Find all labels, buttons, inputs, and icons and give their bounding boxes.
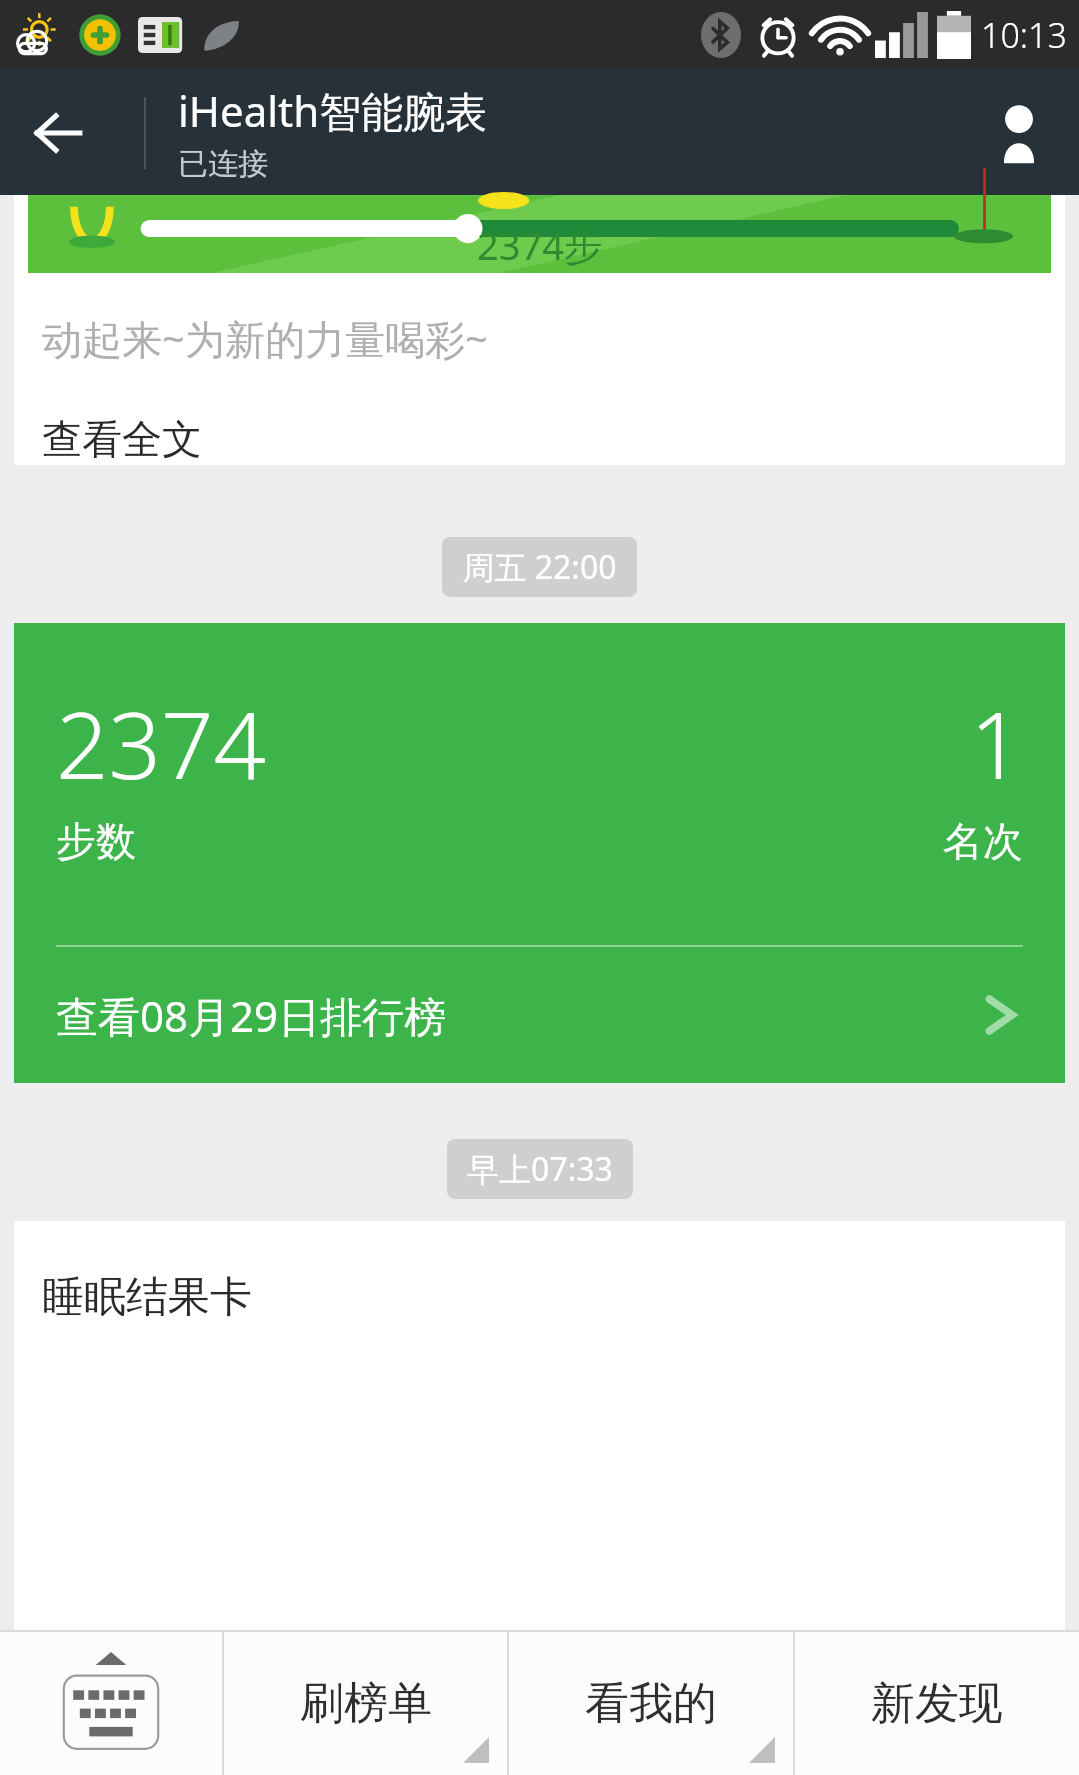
staticText: 名次 (943, 816, 1023, 866)
button[interactable]: Keyboard (0, 1632, 222, 1775)
staticText: 刷榜单 (300, 1676, 432, 1731)
staticText: 1 (970, 681, 1023, 806)
staticText: 已连接 (178, 145, 268, 183)
button[interactable]: 2374步 (14, 195, 1065, 465)
staticText: 周五 22:00 (462, 545, 617, 589)
button[interactable]: Profile (959, 70, 1079, 195)
button[interactable]: 刷榜单 (224, 1632, 507, 1775)
staticText: iHealth智能腕表 (178, 82, 488, 139)
button[interactable]: 2374 (14, 623, 1065, 1083)
staticText: 查看全文 (42, 414, 202, 464)
staticText: 新发现 (871, 1676, 1003, 1731)
staticText: 睡眠结果卡 (42, 1271, 252, 1324)
staticText: 看我的 (585, 1676, 717, 1731)
staticText: 2374步 (477, 219, 602, 271)
staticText: 动起来~为新的力量喝彩~ (42, 311, 488, 366)
button[interactable]: 看我的 (509, 1632, 793, 1775)
staticText: 早上07:33 (467, 1147, 613, 1191)
button[interactable]: 新发现 (795, 1632, 1079, 1775)
button[interactable]: 查看08月29日排行榜 (14, 947, 1065, 1083)
staticText: 步数 (56, 816, 136, 866)
staticText: 查看08月29日排行榜 (56, 987, 447, 1044)
button[interactable]: Back (0, 70, 115, 195)
staticText: 2374 (56, 681, 267, 806)
button[interactable]: 睡眠结果卡 (14, 1221, 1065, 1630)
staticText: 10:13 (981, 12, 1067, 58)
